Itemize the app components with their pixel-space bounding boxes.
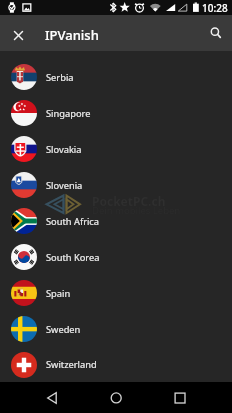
button[interactable]: Slovakia — [0, 131, 232, 167]
button[interactable]: Back — [34, 382, 70, 413]
button[interactable]: Recents — [162, 382, 198, 413]
staticText: Sweden — [46, 323, 81, 336]
button[interactable]: Serbia — [0, 59, 232, 95]
staticText: Spain — [46, 287, 71, 300]
button[interactable]: Switzerland — [0, 347, 232, 382]
staticText: Switzerland — [46, 358, 97, 371]
button[interactable]: Search — [198, 16, 232, 52]
button[interactable]: Home — [98, 382, 134, 413]
staticText: Slovenia — [46, 179, 83, 192]
button[interactable]: Spain — [0, 275, 232, 311]
staticText: South Korea — [46, 251, 100, 264]
staticText: Serbia — [46, 71, 74, 84]
staticText: Singapore — [46, 107, 91, 120]
button[interactable]: South Africa — [0, 203, 232, 239]
button[interactable]: Sweden — [0, 311, 232, 347]
staticText: IPVanish — [45, 26, 99, 44]
button[interactable]: Slovenia — [0, 167, 232, 203]
staticText: South Africa — [46, 215, 100, 228]
button[interactable]: South Korea — [0, 239, 232, 275]
staticText: 10:28 — [202, 1, 228, 15]
staticText: Slovakia — [46, 143, 82, 156]
button[interactable]: Singapore — [0, 95, 232, 131]
button[interactable]: Close — [0, 17, 36, 53]
